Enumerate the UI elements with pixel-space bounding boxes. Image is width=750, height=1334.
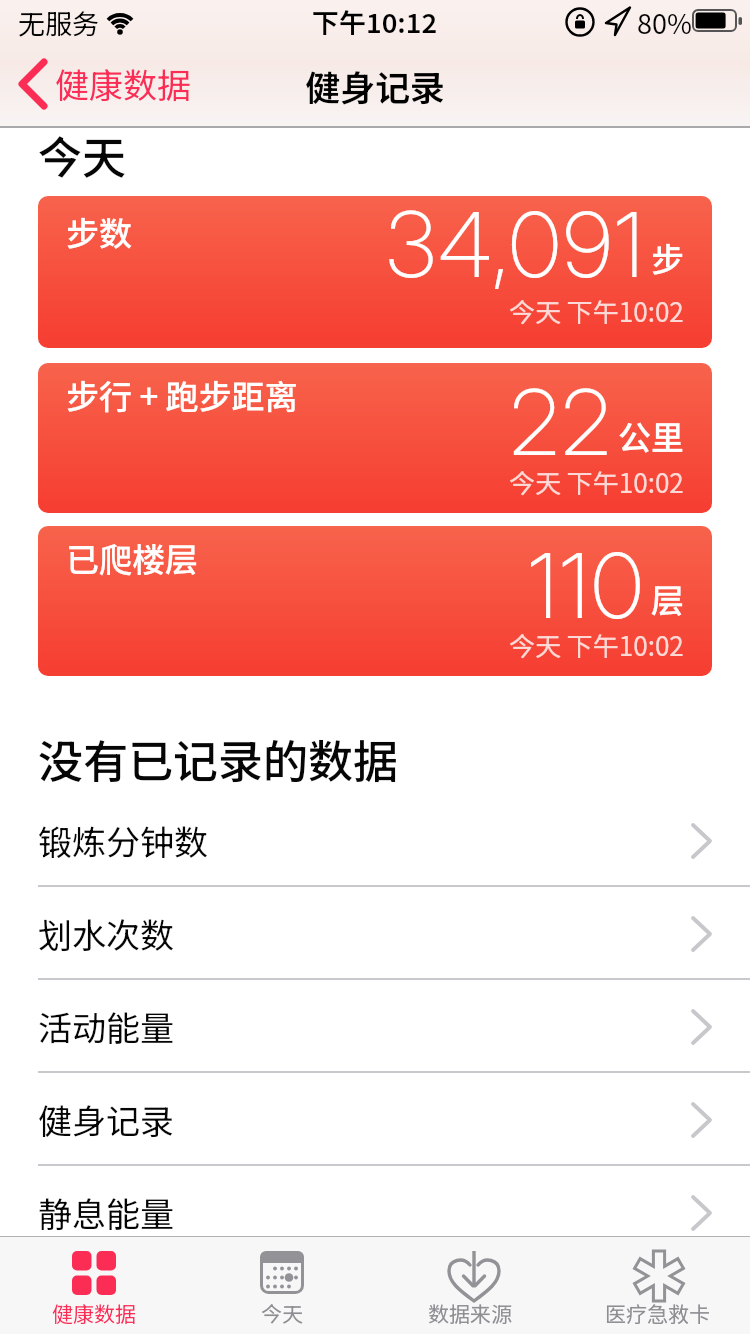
staticText: 80% xyxy=(637,3,692,42)
button[interactable]: 健康数据 xyxy=(10,55,200,115)
staticText: 今天 下午10:02 xyxy=(509,463,684,501)
staticText: 数据来源 xyxy=(428,1298,512,1328)
staticText: 静息能量 xyxy=(38,1188,174,1237)
staticText: 步数 xyxy=(66,208,132,256)
staticText: 已爬楼层 xyxy=(66,534,198,582)
staticText: 22 xyxy=(510,368,613,477)
button[interactable]: 划水次数 xyxy=(0,887,750,980)
staticText: 健身记录 xyxy=(305,60,446,111)
staticText: 健康数据 xyxy=(52,1298,136,1328)
button[interactable]: 健康数据 xyxy=(0,1236,188,1334)
staticText: 今天 xyxy=(38,123,126,187)
button[interactable]: 步行 + 跑步距离 xyxy=(38,363,712,513)
staticText: 今天 下午10:02 xyxy=(509,626,684,664)
staticText: 步行 + 跑步距离 xyxy=(66,371,298,419)
button[interactable]: 数据来源 xyxy=(376,1236,564,1334)
button[interactable]: 今天 xyxy=(188,1236,376,1334)
staticText: 公里 xyxy=(618,412,684,460)
staticText: 层 xyxy=(651,575,684,623)
button[interactable]: 医疗急救卡 xyxy=(564,1236,750,1334)
staticText: 110 xyxy=(528,531,646,640)
staticText: 锻炼分钟数 xyxy=(38,816,208,865)
staticText: 划水次数 xyxy=(38,909,174,958)
staticText: 今天 下午10:02 xyxy=(509,292,684,330)
staticText: 健康数据 xyxy=(55,59,191,108)
staticText: 步 xyxy=(651,234,684,282)
button[interactable]: 步数 xyxy=(38,196,712,348)
staticText: 今天 xyxy=(261,1298,303,1328)
button[interactable]: 已爬楼层 xyxy=(38,526,712,676)
staticText: 医疗急救卡 xyxy=(605,1298,710,1328)
button[interactable]: 健身记录 xyxy=(0,1073,750,1166)
button[interactable]: 锻炼分钟数 xyxy=(0,794,750,887)
staticText: 活动能量 xyxy=(38,1002,174,1051)
button[interactable]: 静息能量 xyxy=(0,1166,750,1259)
staticText: 健身记录 xyxy=(38,1095,174,1144)
button[interactable]: 活动能量 xyxy=(0,980,750,1073)
staticText: 34,091 xyxy=(386,196,646,299)
staticText: 无服务 xyxy=(18,3,99,42)
staticText: 下午10:12 xyxy=(312,2,438,41)
staticText: 没有已记录的数据 xyxy=(38,726,399,791)
